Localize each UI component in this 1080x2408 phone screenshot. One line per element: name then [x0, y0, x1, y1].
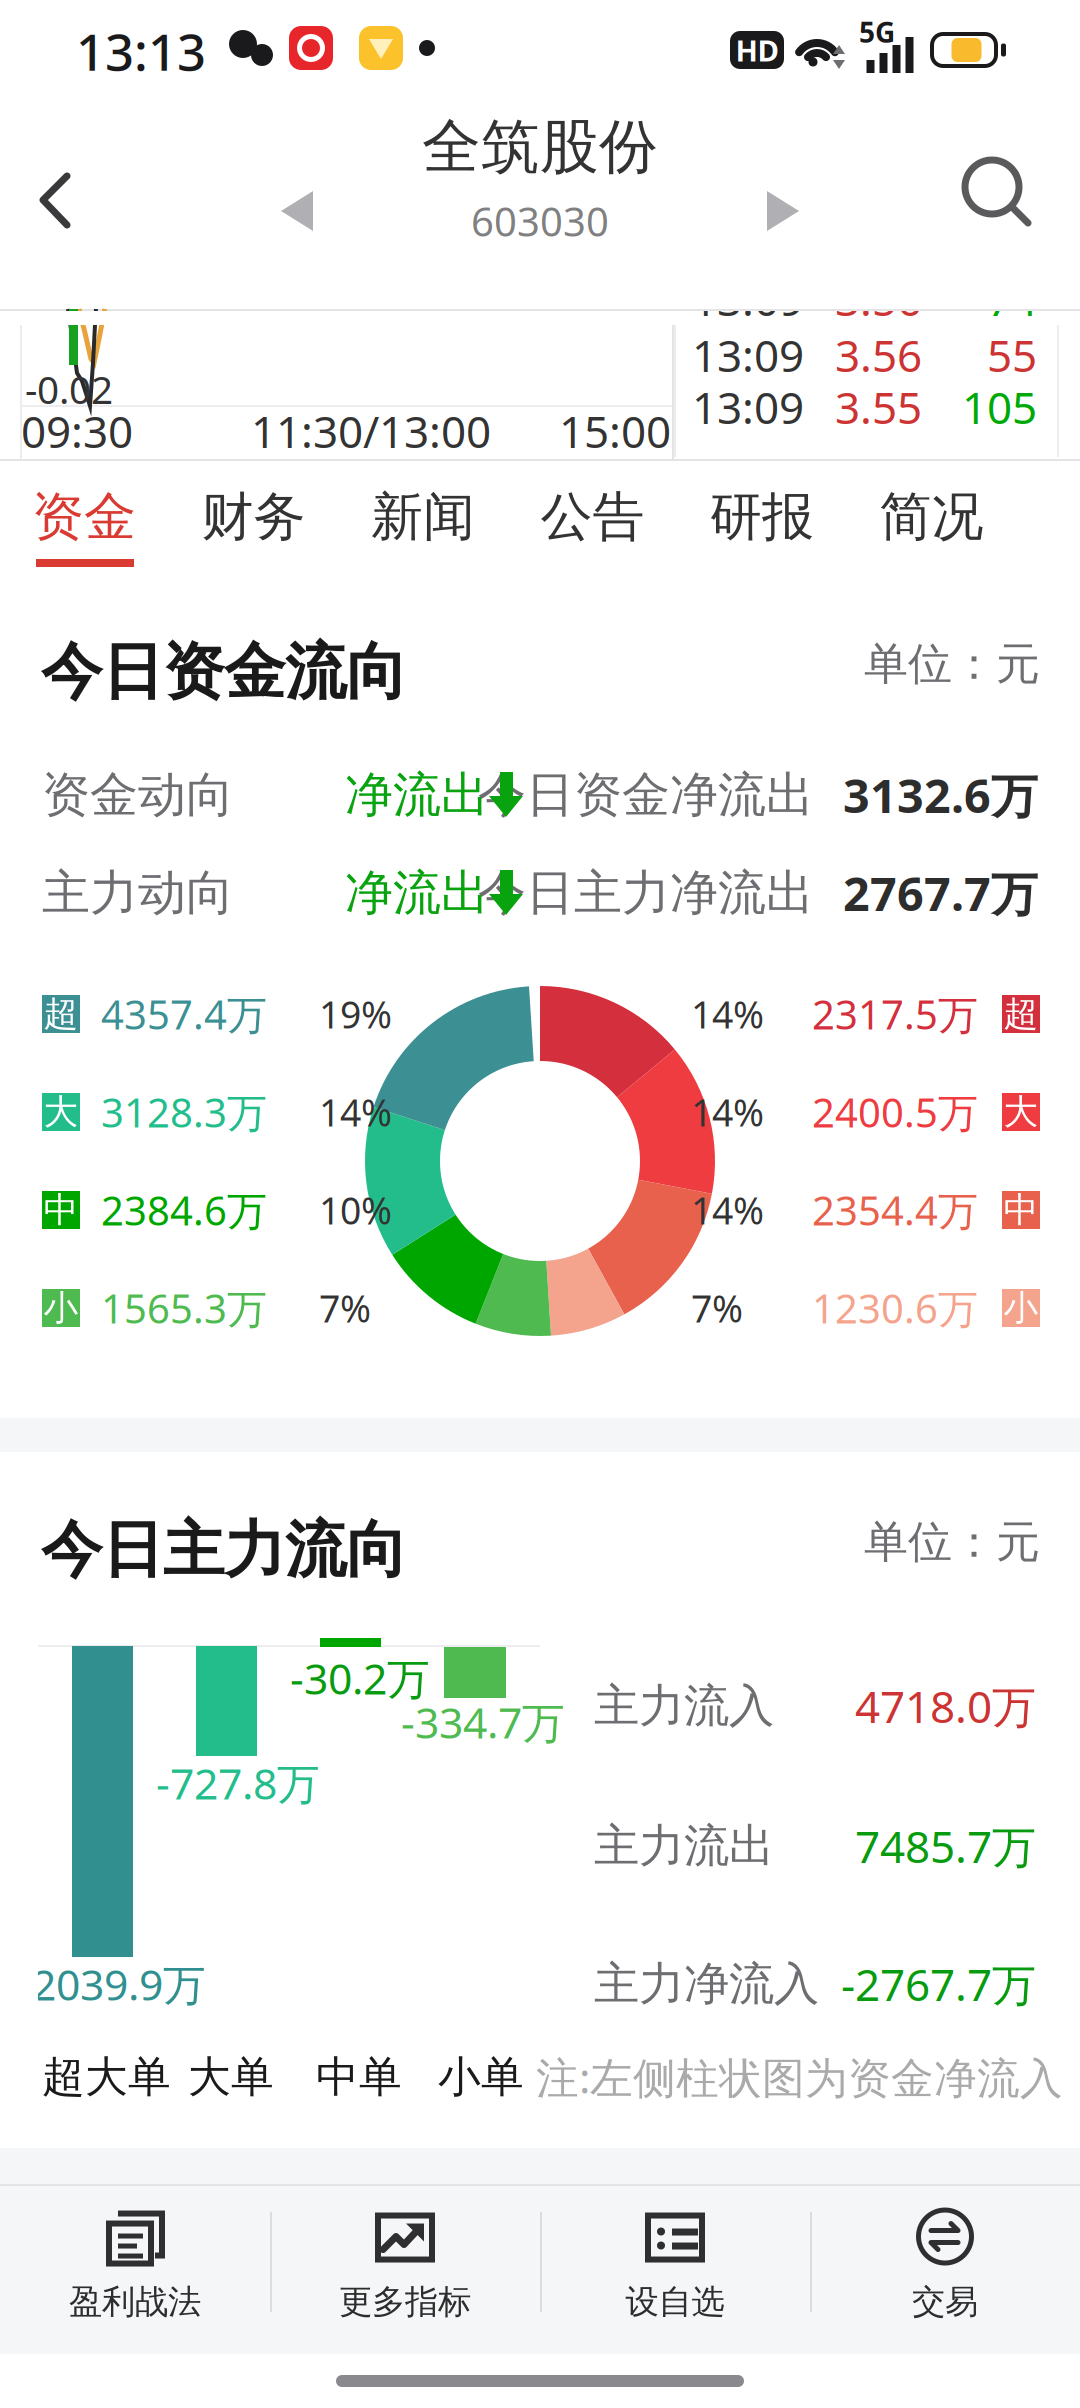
staticText: 3128.3万 [101, 1085, 267, 1138]
staticText: -2767.7万 [841, 1955, 1036, 2013]
staticText: -727.8万 [156, 1755, 320, 1811]
staticText: 55 [987, 326, 1037, 384]
staticText: 3.55 [835, 378, 922, 436]
staticText: 13:09 [692, 326, 804, 384]
staticText: 13:13 [76, 17, 206, 85]
staticText: 3.56 [835, 326, 922, 384]
button[interactable]: 设自选 [541, 2187, 809, 2341]
staticText: 2317.5万 [812, 987, 978, 1040]
staticText: 今日主力流向 [41, 1512, 407, 1588]
button[interactable]: 上一只股票 [237, 151, 357, 271]
staticText: 105 [962, 378, 1037, 436]
staticText: 中 [1003, 1189, 1038, 1231]
staticText: 简况 [879, 485, 983, 549]
staticText: 超 [1003, 993, 1038, 1035]
staticText: 10% [319, 1185, 392, 1235]
staticText: 15:00 [559, 402, 671, 460]
button[interactable]: 简况 [848, 459, 1014, 575]
staticText: 603030 [471, 194, 609, 247]
button[interactable]: 公告 [509, 459, 675, 575]
staticText: 11:30/13:00 [251, 402, 491, 460]
button[interactable]: 交易 [811, 2187, 1079, 2341]
staticText: 7% [319, 1283, 371, 1333]
staticText: 7485.7万 [855, 1817, 1036, 1875]
staticText: 资金 [32, 485, 136, 549]
button[interactable]: 新闻 [340, 459, 506, 575]
staticText: 超大单 [42, 2051, 171, 2103]
staticText: 净流出 [345, 863, 489, 922]
staticText: 新闻 [371, 485, 475, 549]
button[interactable]: 财务 [170, 459, 336, 575]
button[interactable]: 研报 [679, 459, 845, 575]
staticText: 中单 [316, 2051, 402, 2103]
staticText: 中 [43, 1189, 78, 1231]
staticText: 大 [43, 1091, 78, 1133]
button[interactable]: 资金 [1, 459, 167, 575]
staticText: 今日资金净流出 [478, 765, 814, 824]
staticText: 主力流入 [594, 1678, 774, 1734]
staticText: 单位：元 [864, 1515, 1040, 1569]
staticText: 大单 [188, 2051, 274, 2103]
button[interactable]: 搜索 [920, 136, 1070, 276]
staticText: 14% [691, 989, 764, 1039]
button[interactable]: 盈利战法 [1, 2187, 269, 2341]
staticText: 公告 [540, 485, 644, 549]
staticText: 13:09 [692, 378, 804, 436]
staticText: -2039.9万 [18, 1956, 206, 2012]
staticText: HD [735, 30, 778, 69]
staticText: 净流出 [345, 765, 489, 824]
staticText: 设自选 [625, 2281, 724, 2322]
staticText: 盈利战法 [69, 2281, 201, 2322]
staticText: 更多指标 [339, 2281, 471, 2322]
button[interactable]: 返回 [0, 165, 132, 305]
staticText: 4718.0万 [855, 1677, 1036, 1735]
staticText: 小 [1003, 1287, 1038, 1329]
staticText: 14% [691, 1185, 764, 1235]
staticText: 09:30 [21, 402, 133, 460]
staticText: 5G [859, 13, 895, 51]
staticText: 财务 [201, 485, 305, 549]
staticText: 13:09 [692, 270, 804, 328]
staticText: 3132.6万 [843, 764, 1038, 826]
staticText: 今日主力净流出 [478, 863, 814, 922]
staticText: 全筑股份 [422, 111, 658, 183]
staticText: 2384.6万 [101, 1183, 267, 1236]
staticText: 2400.5万 [812, 1085, 978, 1138]
staticText: 主力动向 [42, 863, 234, 922]
staticText: -30.2万 [290, 1650, 430, 1706]
staticText: 超 [43, 993, 78, 1035]
staticText: 今日资金流向 [41, 634, 407, 710]
staticText: 小单 [438, 2051, 524, 2103]
staticText: 1565.3万 [101, 1281, 267, 1334]
staticText: 7% [691, 1283, 743, 1333]
button[interactable]: 下一只股票 [723, 151, 843, 271]
button[interactable]: 更多指标 [271, 2187, 539, 2341]
staticText: 3.56 [835, 270, 922, 328]
staticText: 主力净流入 [594, 1956, 819, 2012]
staticText: 小 [43, 1287, 78, 1329]
staticText: -334.7万 [401, 1694, 565, 1750]
staticText: -0.02 [25, 363, 113, 415]
staticText: 单位：元 [864, 637, 1040, 691]
staticText: 74 [987, 270, 1037, 328]
staticText: 资金动向 [42, 765, 234, 824]
staticText: 注:左侧柱状图为资金净流入 [536, 2049, 1063, 2105]
staticText: 2767.7万 [843, 862, 1038, 924]
staticText: 2354.4万 [812, 1183, 978, 1236]
staticText: 19% [319, 989, 392, 1039]
staticText: 14% [319, 1087, 392, 1137]
staticText: 1230.6万 [812, 1281, 978, 1334]
staticText: 14% [691, 1087, 764, 1137]
staticText: 大 [1003, 1091, 1038, 1133]
staticText: 4357.4万 [101, 987, 267, 1040]
staticText: 研报 [710, 485, 814, 549]
staticText: 主力流出 [594, 1818, 774, 1874]
staticText: 交易 [912, 2281, 978, 2322]
